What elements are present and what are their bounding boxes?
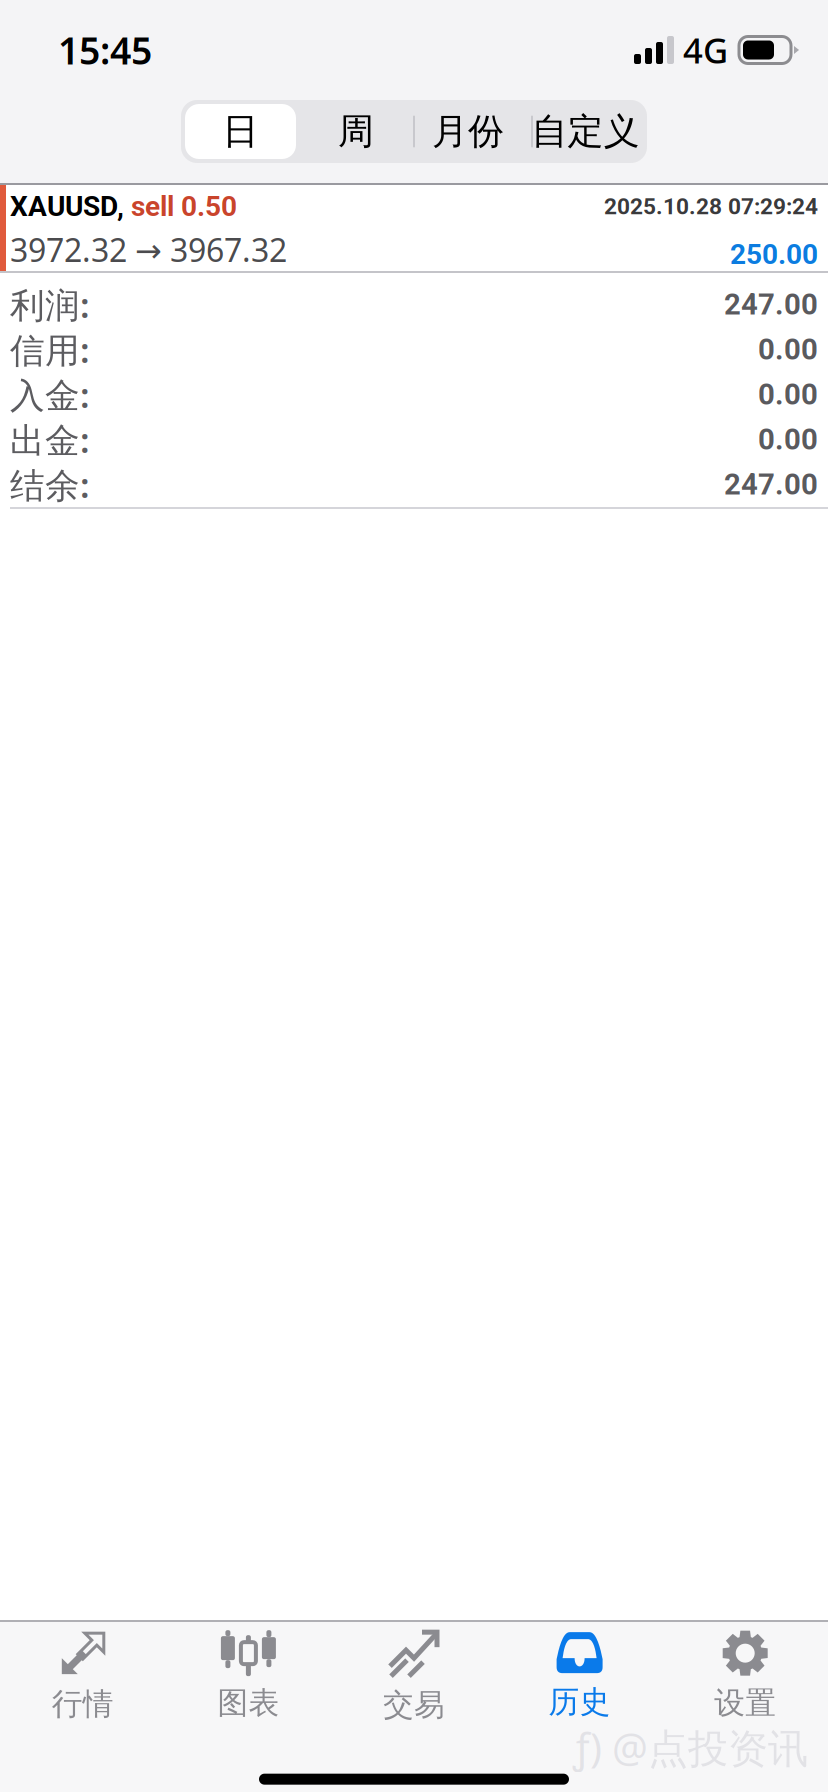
- staticText: 0.00: [758, 377, 818, 412]
- button[interactable]: 行情: [0, 1622, 166, 1730]
- button[interactable]: 图表: [166, 1622, 331, 1730]
- staticText: 入金:: [10, 371, 90, 417]
- staticText: 4G: [683, 27, 728, 73]
- staticText: 利润:: [10, 281, 90, 327]
- staticText: 周: [338, 109, 374, 154]
- staticText: ƒ) @点投资讯: [573, 1720, 808, 1774]
- button[interactable]: 自定义: [524, 100, 647, 163]
- staticText: 信用:: [10, 326, 90, 372]
- staticText: 自定义: [531, 109, 639, 154]
- staticText: 出金:: [10, 416, 90, 462]
- button[interactable]: 周: [300, 100, 412, 163]
- button[interactable]: XAUUSD,: [0, 185, 828, 271]
- staticText: 行情: [52, 1685, 114, 1723]
- staticText: 结余:: [10, 461, 90, 507]
- staticText: 2025.10.28 07:29:24: [604, 193, 818, 220]
- staticText: 历史: [549, 1683, 611, 1721]
- button[interactable]: 交易: [331, 1622, 497, 1730]
- staticText: 247.00: [724, 467, 818, 502]
- staticText: 0.00: [758, 422, 818, 457]
- staticText: 3972.32 → 3967.32: [10, 228, 287, 271]
- button[interactable]: 日: [181, 100, 300, 163]
- staticText: 15:45: [58, 25, 152, 75]
- staticText: 247.00: [724, 287, 818, 322]
- button[interactable]: 历史: [497, 1622, 662, 1730]
- staticText: 日: [222, 109, 258, 154]
- staticText: XAUUSD,: [10, 190, 131, 223]
- staticText: 0.00: [758, 332, 818, 367]
- staticText: 250.00: [730, 238, 818, 271]
- staticText: 设置: [714, 1684, 776, 1722]
- staticText: 图表: [217, 1684, 279, 1722]
- button[interactable]: 月份: [412, 100, 524, 163]
- staticText: 月份: [432, 109, 504, 154]
- staticText: sell 0.50: [131, 190, 237, 223]
- button[interactable]: 设置: [662, 1622, 828, 1730]
- staticText: 交易: [383, 1686, 445, 1724]
